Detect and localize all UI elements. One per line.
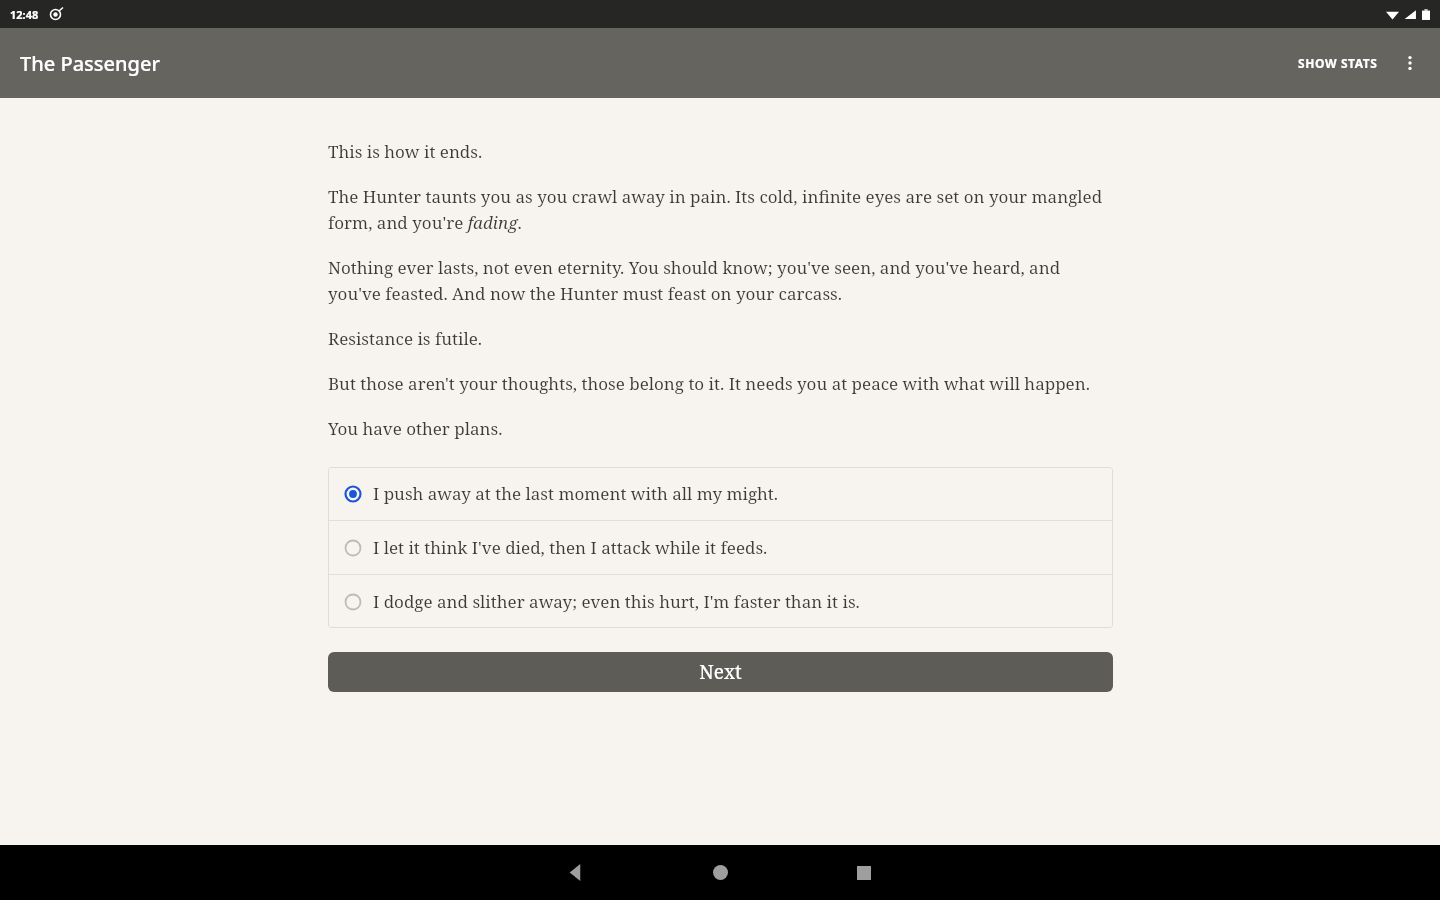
button[interactable]: Home	[684, 845, 756, 900]
staticText: This is how it ends.	[328, 140, 483, 163]
staticText: 12:48	[10, 7, 39, 22]
button[interactable]: I dodge and slither away; even this hurt…	[328, 575, 1113, 628]
button[interactable]: I let it think I've died, then I attack …	[328, 521, 1113, 574]
staticText: I let it think I've died, then I attack …	[373, 536, 768, 559]
staticText: The Passenger	[20, 50, 160, 77]
staticText: Next	[699, 659, 742, 685]
staticText: You have other plans.	[328, 417, 503, 440]
button[interactable]: Recent apps	[828, 845, 900, 900]
staticText: The Hunter taunts you as you crawl away …	[328, 185, 1113, 234]
button[interactable]: Back	[540, 845, 612, 900]
button[interactable]: I push away at the last moment with all …	[328, 467, 1113, 520]
staticText: Resistance is futile.	[328, 327, 483, 350]
button[interactable]: Next	[328, 652, 1113, 692]
staticText: I push away at the last moment with all …	[373, 482, 779, 505]
button[interactable]: More options	[1388, 41, 1432, 85]
staticText: I dodge and slither away; even this hurt…	[373, 590, 860, 613]
staticText: Nothing ever lasts, not even eternity. Y…	[328, 256, 1113, 305]
staticText: But those aren't your thoughts, those be…	[328, 372, 1090, 395]
staticText: SHOW STATS	[1298, 55, 1378, 71]
button[interactable]: SHOW STATS	[1288, 45, 1388, 81]
